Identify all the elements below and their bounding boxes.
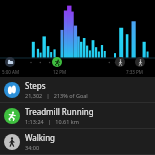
staticText: 12 PM [53, 69, 67, 75]
staticText: Treadmill Running [25, 106, 94, 117]
staticText: 34:00 [25, 144, 40, 151]
button[interactable]: sleep activity marker [0, 0, 155, 77]
staticText: Walking [25, 132, 56, 143]
button[interactable]: run activity marker [52, 57, 62, 67]
button[interactable]: walk activity marker [115, 57, 125, 67]
button[interactable]: Steps [0, 77, 155, 102]
button[interactable]: sleep activity marker [5, 57, 15, 67]
button[interactable]: Walking [0, 129, 155, 154]
button[interactable]: Treadmill Running [0, 103, 155, 128]
staticText: 7:33 PM [126, 69, 143, 75]
staticText: 5:00 AM [2, 69, 20, 75]
staticText: 1:13:24 | 10.61 km [25, 118, 79, 125]
staticText: 21,302 | 213% of Goal [25, 92, 88, 99]
staticText: Steps [25, 80, 46, 91]
button[interactable]: walk activity marker [135, 57, 145, 67]
